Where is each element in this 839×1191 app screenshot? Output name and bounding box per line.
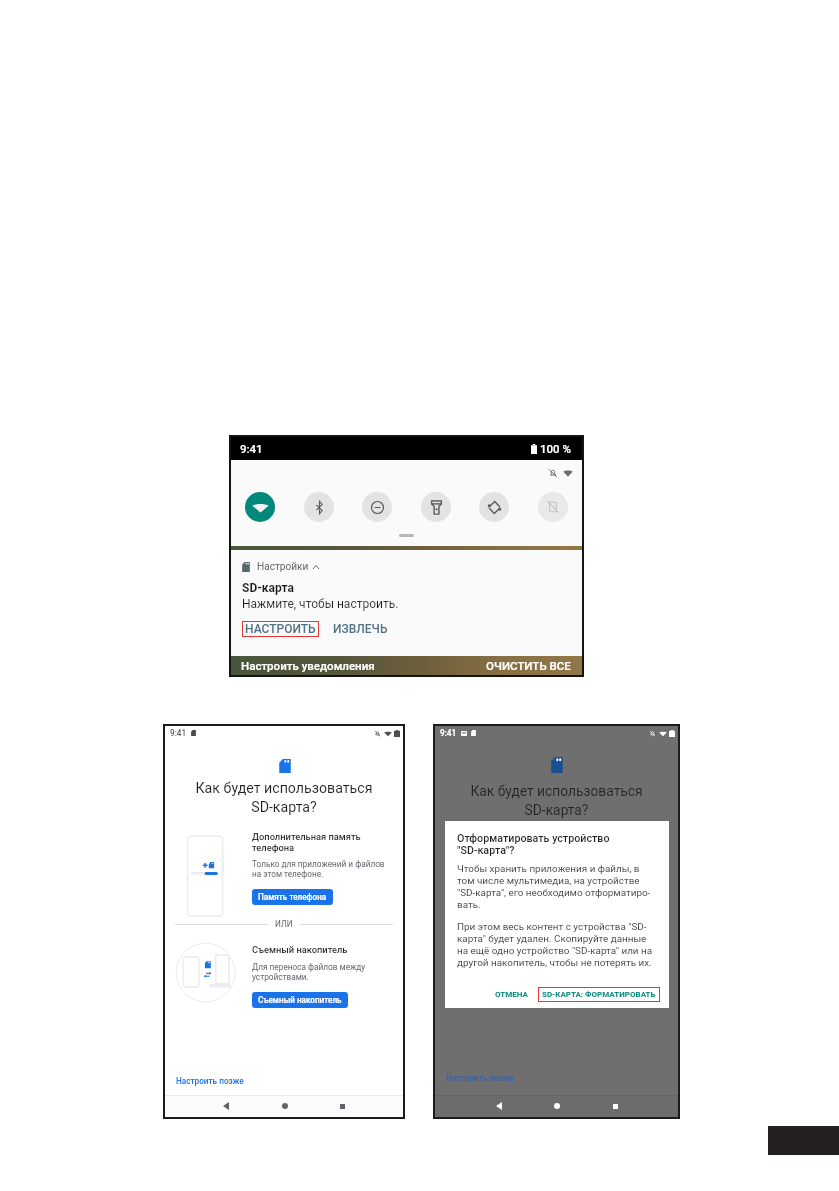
staticText: 9:41	[240, 442, 263, 455]
staticText: ОТМЕНА	[495, 990, 528, 999]
staticText: SD-КАРТА: ФОРМАТИРОВАТЬ	[542, 990, 656, 999]
staticText: Для переноса файлов между устройствами.	[252, 962, 366, 982]
button[interactable]: SD-КАРТА: ФОРМАТИРОВАТЬ	[538, 987, 660, 1002]
staticText: Съемный накопитель	[252, 944, 348, 955]
staticText: Отформатировать устройство "SD-карта"?	[457, 832, 610, 856]
button[interactable]: Back	[216, 1096, 236, 1116]
button[interactable]: Съемный накопитель	[252, 992, 348, 1008]
staticText: Настроить позже	[176, 1076, 244, 1086]
staticText: Настроить уведомления	[241, 659, 375, 672]
staticText: 9:41	[170, 728, 187, 738]
button[interactable]: Память телефона	[252, 889, 333, 905]
staticText: SD-карта	[242, 581, 294, 595]
button[interactable]: ОЧИСТИТЬ ВСЕ	[486, 659, 571, 672]
staticText: При этом весь контент с устройства "SD- …	[457, 921, 653, 969]
button[interactable]: Do not disturb	[362, 492, 392, 522]
staticText: ОЧИСТИТЬ ВСЕ	[486, 659, 571, 672]
button[interactable]: Настроить позже	[446, 1073, 514, 1083]
staticText: Как будет использоваться SD-карта?	[165, 780, 403, 816]
button[interactable]: Recent apps	[332, 1096, 352, 1116]
button[interactable]: ОТМЕНА	[492, 988, 531, 1001]
staticText: 9:41	[440, 728, 457, 738]
button[interactable]: Recent apps	[605, 1096, 625, 1116]
staticText: 100 %	[540, 442, 571, 455]
button[interactable]: Cast off	[538, 492, 568, 522]
button[interactable]: Back	[489, 1096, 509, 1116]
staticText: ИЛИ	[275, 919, 293, 929]
staticText: Как будет использоваться SD-карта?	[435, 783, 678, 818]
staticText: Чтобы хранить приложения и файлы, в том …	[457, 863, 651, 911]
button[interactable]: Flashlight	[421, 492, 451, 522]
staticText: Нажмите, чтобы настроить.	[242, 597, 399, 611]
button[interactable]: НАСТРОИТЬ	[242, 621, 319, 637]
staticText: Память телефона	[258, 892, 327, 902]
button[interactable]: Настроить позже	[176, 1076, 244, 1086]
staticText: Настроить позже	[446, 1073, 514, 1083]
button[interactable]: Bluetooth	[304, 492, 334, 522]
button[interactable]: Wi-Fi	[245, 492, 275, 522]
staticText: Настройки	[257, 561, 309, 573]
button[interactable]: Auto-rotate	[479, 492, 509, 522]
button[interactable]: Настроить уведомления	[241, 659, 375, 672]
button[interactable]: ИЗВЛЕЧЬ	[333, 620, 388, 638]
button[interactable]: Home	[547, 1096, 567, 1116]
staticText: ИЗВЛЕЧЬ	[333, 622, 388, 636]
staticText: Съемный накопитель	[258, 995, 342, 1005]
staticText: Только для приложений и файлов на этом т…	[252, 859, 385, 879]
staticText: НАСТРОИТЬ	[245, 622, 316, 636]
staticText: Дополнительная память телефона	[252, 831, 361, 853]
button[interactable]: Home	[275, 1096, 295, 1116]
